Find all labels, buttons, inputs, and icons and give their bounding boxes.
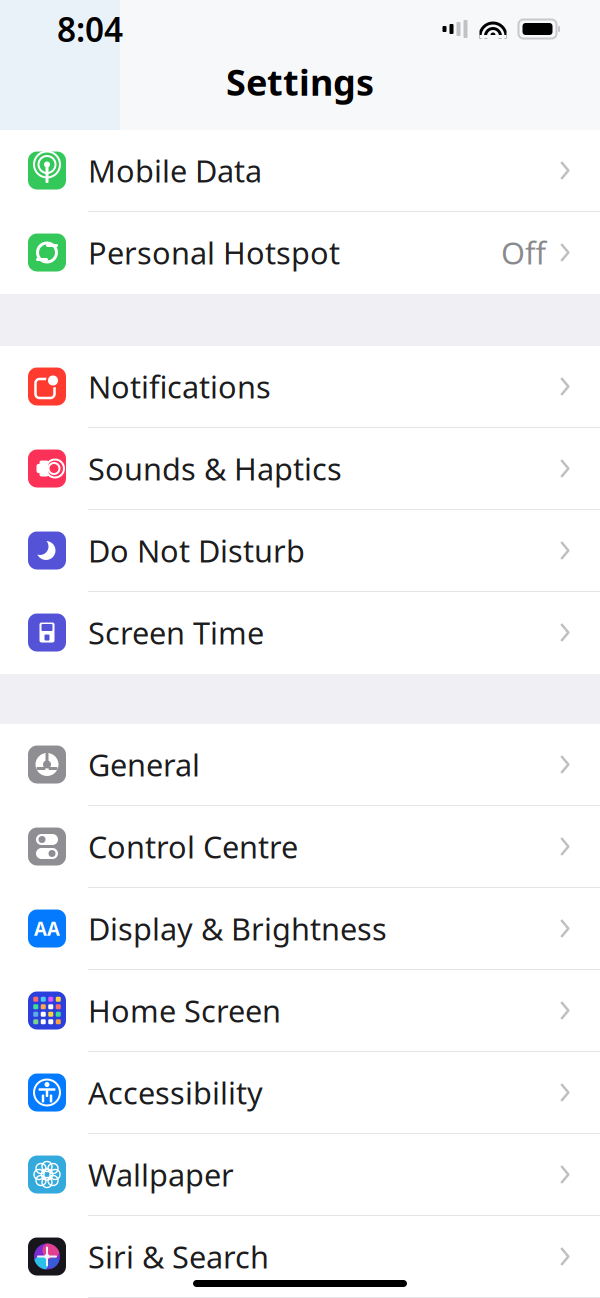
button[interactable]: Sounds & Haptics (0, 428, 600, 510)
staticText: General (88, 744, 200, 785)
button[interactable]: Wallpaper (0, 1134, 600, 1216)
staticText: Sounds & Haptics (88, 448, 342, 489)
staticText: Screen Time (88, 612, 264, 653)
staticText: Home Screen (88, 990, 281, 1031)
button[interactable]: Home Screen (0, 970, 600, 1052)
button[interactable]: Screen Time (0, 592, 600, 674)
button[interactable]: Do Not Disturb (0, 510, 600, 592)
button[interactable]: Accessibility (0, 1052, 600, 1134)
button[interactable]: Siri & Search (0, 1216, 600, 1298)
staticText: Settings (226, 58, 374, 106)
staticText: Wallpaper (88, 1154, 234, 1195)
button[interactable]: Mobile Data (0, 130, 600, 212)
staticText: Notifications (88, 366, 271, 407)
button[interactable]: General (0, 724, 600, 806)
staticText: AA (34, 916, 60, 941)
button[interactable]: Personal Hotspot (0, 212, 600, 294)
button[interactable]: Notifications (0, 346, 600, 428)
staticText: 8:04 (57, 7, 123, 51)
staticText: Siri & Search (88, 1236, 269, 1277)
button[interactable]: Control Centre (0, 806, 600, 888)
staticText: Off (501, 232, 546, 273)
staticText: Accessibility (88, 1072, 263, 1113)
staticText: Do Not Disturb (88, 530, 305, 571)
staticText: Mobile Data (88, 150, 262, 191)
button[interactable]: AA (0, 888, 600, 970)
staticText: Personal Hotspot (88, 232, 340, 273)
staticText: Display & Brightness (88, 908, 387, 949)
staticText: Control Centre (88, 826, 298, 867)
